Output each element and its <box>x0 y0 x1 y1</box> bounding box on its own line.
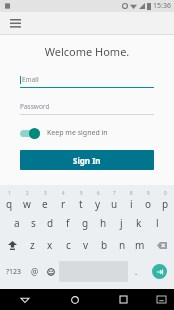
staticText: q <box>6 197 13 211</box>
button[interactable]: Enter <box>152 264 167 279</box>
button[interactable]: 6 <box>89 188 106 212</box>
button[interactable]: Back <box>0 289 50 310</box>
button[interactable]: f <box>59 212 76 234</box>
button[interactable]: . <box>128 256 144 287</box>
staticText: w <box>23 197 31 211</box>
staticText: h <box>100 216 107 230</box>
staticText: 7 <box>113 190 116 196</box>
staticText: c <box>66 238 71 252</box>
staticText: Welcome Home. <box>0 44 174 59</box>
button[interactable]: Open navigation menu <box>6 15 24 33</box>
staticText: Email <box>22 75 39 84</box>
button[interactable]: Password <box>20 102 154 115</box>
staticText: p <box>162 197 169 211</box>
staticText: ?123 <box>6 267 22 277</box>
staticText: u <box>111 197 118 211</box>
staticText: k <box>136 216 142 230</box>
button[interactable]: ?123 <box>0 256 27 287</box>
button[interactable]: 0 <box>157 188 174 212</box>
staticText: l <box>156 216 159 230</box>
button[interactable]: Emoji <box>43 256 59 287</box>
button[interactable]: 2 <box>18 188 36 212</box>
staticText: x <box>47 238 53 252</box>
staticText: 3 <box>44 190 47 196</box>
staticText: 6 <box>97 190 100 196</box>
button[interactable]: 1 <box>0 188 18 212</box>
staticText: 1 <box>8 190 11 196</box>
button[interactable]: a <box>8 212 25 234</box>
staticText: m <box>135 238 145 252</box>
button[interactable]: j <box>112 212 130 234</box>
staticText: 2 <box>26 190 29 196</box>
button[interactable]: Recent apps <box>99 289 148 310</box>
button[interactable]: Backspace <box>149 234 174 256</box>
button[interactable]: z <box>24 234 41 256</box>
staticText: 5 <box>80 190 83 196</box>
button[interactable]: s <box>25 212 42 234</box>
button[interactable]: 7 <box>106 188 123 212</box>
staticText: s <box>31 216 36 230</box>
staticText: v <box>83 238 89 252</box>
button[interactable]: l <box>148 212 166 234</box>
staticText: b <box>101 238 108 252</box>
staticText: 9 <box>147 190 150 196</box>
staticText: Keep me signed in <box>47 128 108 138</box>
button[interactable]: c <box>59 234 77 256</box>
button[interactable]: 3 <box>36 188 54 212</box>
button[interactable]: d <box>42 212 59 234</box>
staticText: 4 <box>62 190 65 196</box>
button[interactable]: m <box>131 234 149 256</box>
button[interactable]: g <box>76 212 94 234</box>
button[interactable]: 4 <box>54 188 72 212</box>
staticText: i <box>130 197 133 211</box>
staticText: y <box>95 197 101 211</box>
button[interactable]: 8 <box>123 188 140 212</box>
button[interactable]: n <box>113 234 131 256</box>
button[interactable]: v <box>77 234 95 256</box>
staticText: g <box>82 216 89 230</box>
button[interactable]: h <box>94 212 112 234</box>
staticText: Sign In <box>73 155 101 166</box>
staticText: 8 <box>130 190 133 196</box>
button[interactable]: Keep me signed in <box>20 127 154 139</box>
staticText: e <box>42 197 48 211</box>
staticText: r <box>61 197 66 211</box>
button[interactable]: b <box>95 234 113 256</box>
staticText: z <box>30 238 35 252</box>
button[interactable]: k <box>130 212 148 234</box>
staticText: . <box>135 266 138 277</box>
staticText: t <box>79 197 83 211</box>
staticText: Password <box>20 102 50 111</box>
button[interactable]: 9 <box>140 188 157 212</box>
staticText: d <box>47 216 54 230</box>
button[interactable]: @ <box>27 256 43 287</box>
staticText: f <box>66 216 70 230</box>
button[interactable]: x <box>41 234 59 256</box>
staticText: o <box>145 197 152 211</box>
staticText: 0 <box>164 190 167 196</box>
staticText: j <box>120 216 123 230</box>
button[interactable]: 5 <box>72 188 89 212</box>
button[interactable]: Email <box>20 75 154 88</box>
button[interactable]: Hide keyboard <box>148 289 174 310</box>
button[interactable]: Home <box>50 289 99 310</box>
staticText: a <box>14 216 20 230</box>
staticText: n <box>119 238 126 252</box>
button[interactable]: Shift <box>0 234 24 256</box>
button[interactable]: Sign In <box>20 150 154 170</box>
staticText: 15:36 <box>153 1 171 11</box>
staticText: @ <box>31 266 39 277</box>
